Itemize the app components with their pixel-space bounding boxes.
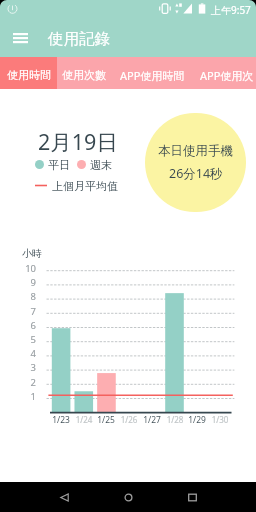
staticText: 1/30: [208, 414, 232, 425]
staticText: 26分14秒: [169, 165, 223, 182]
staticText: 2月19日: [38, 127, 118, 156]
button[interactable]: 本日使用手機: [145, 113, 246, 212]
button[interactable]: APP使用次數: [194, 57, 256, 89]
staticText: 1/24: [72, 414, 96, 425]
staticText: 1/29: [185, 414, 209, 426]
staticText: 平日: [48, 158, 70, 171]
button[interactable]: 使用次數: [57, 57, 110, 89]
staticText: 週末: [90, 158, 112, 171]
staticText: 小時: [22, 247, 42, 260]
staticText: 上個月平均值: [52, 179, 118, 192]
staticText: 6: [20, 319, 36, 332]
staticText: 上午9:57: [211, 3, 251, 17]
staticText: 5: [20, 333, 36, 346]
button[interactable]: Recents: [171, 482, 214, 512]
staticText: 7: [20, 305, 36, 318]
staticText: 1/25: [94, 414, 118, 426]
staticText: APP使用時間: [120, 68, 185, 83]
button[interactable]: APP使用時間: [110, 57, 195, 89]
button[interactable]: Back: [43, 482, 86, 512]
staticText: 4: [20, 347, 36, 360]
button[interactable]: Menu: [6, 24, 34, 52]
staticText: 8: [20, 290, 36, 303]
staticText: APP使用次數: [200, 68, 256, 83]
staticText: 2: [20, 376, 36, 389]
staticText: 1/26: [117, 414, 141, 425]
button[interactable]: 使用時間: [0, 57, 57, 89]
staticText: 1/23: [49, 414, 73, 426]
staticText: 1/27: [140, 414, 164, 426]
staticText: 9: [20, 276, 36, 289]
staticText: 1/28: [163, 414, 187, 425]
staticText: 10: [20, 262, 36, 275]
staticText: 使用記錄: [48, 29, 110, 49]
button[interactable]: Home: [107, 482, 150, 512]
staticText: 1: [20, 390, 36, 403]
staticText: 本日使用手機: [158, 143, 233, 159]
staticText: 3: [20, 361, 36, 374]
staticText: 使用次數: [62, 68, 106, 82]
staticText: 使用時間: [7, 68, 51, 82]
